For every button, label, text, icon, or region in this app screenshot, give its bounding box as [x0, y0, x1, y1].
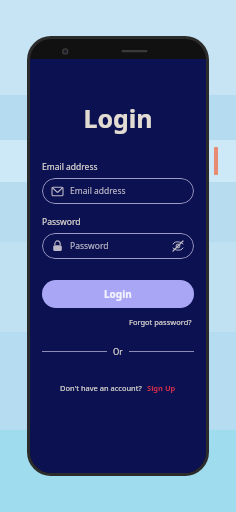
staticText: Email address [42, 161, 98, 173]
button[interactable]: Forgot password? [127, 316, 194, 328]
staticText: Login [42, 101, 194, 135]
button[interactable]: Login [42, 280, 194, 308]
staticText: Sign Up [147, 383, 176, 393]
button[interactable]: Email address [42, 178, 194, 204]
staticText: Email address [70, 185, 126, 197]
staticText: Password [70, 240, 109, 252]
staticText: Or [113, 346, 123, 357]
button[interactable]: Sign Up [142, 383, 176, 393]
staticText: Login [104, 287, 132, 301]
staticText: Password [42, 216, 81, 228]
button[interactable]: Toggle password visibility [172, 240, 184, 252]
button[interactable]: Password [42, 233, 194, 259]
staticText: Forgot password? [129, 317, 192, 327]
staticText: Don't have an account? [60, 383, 142, 393]
